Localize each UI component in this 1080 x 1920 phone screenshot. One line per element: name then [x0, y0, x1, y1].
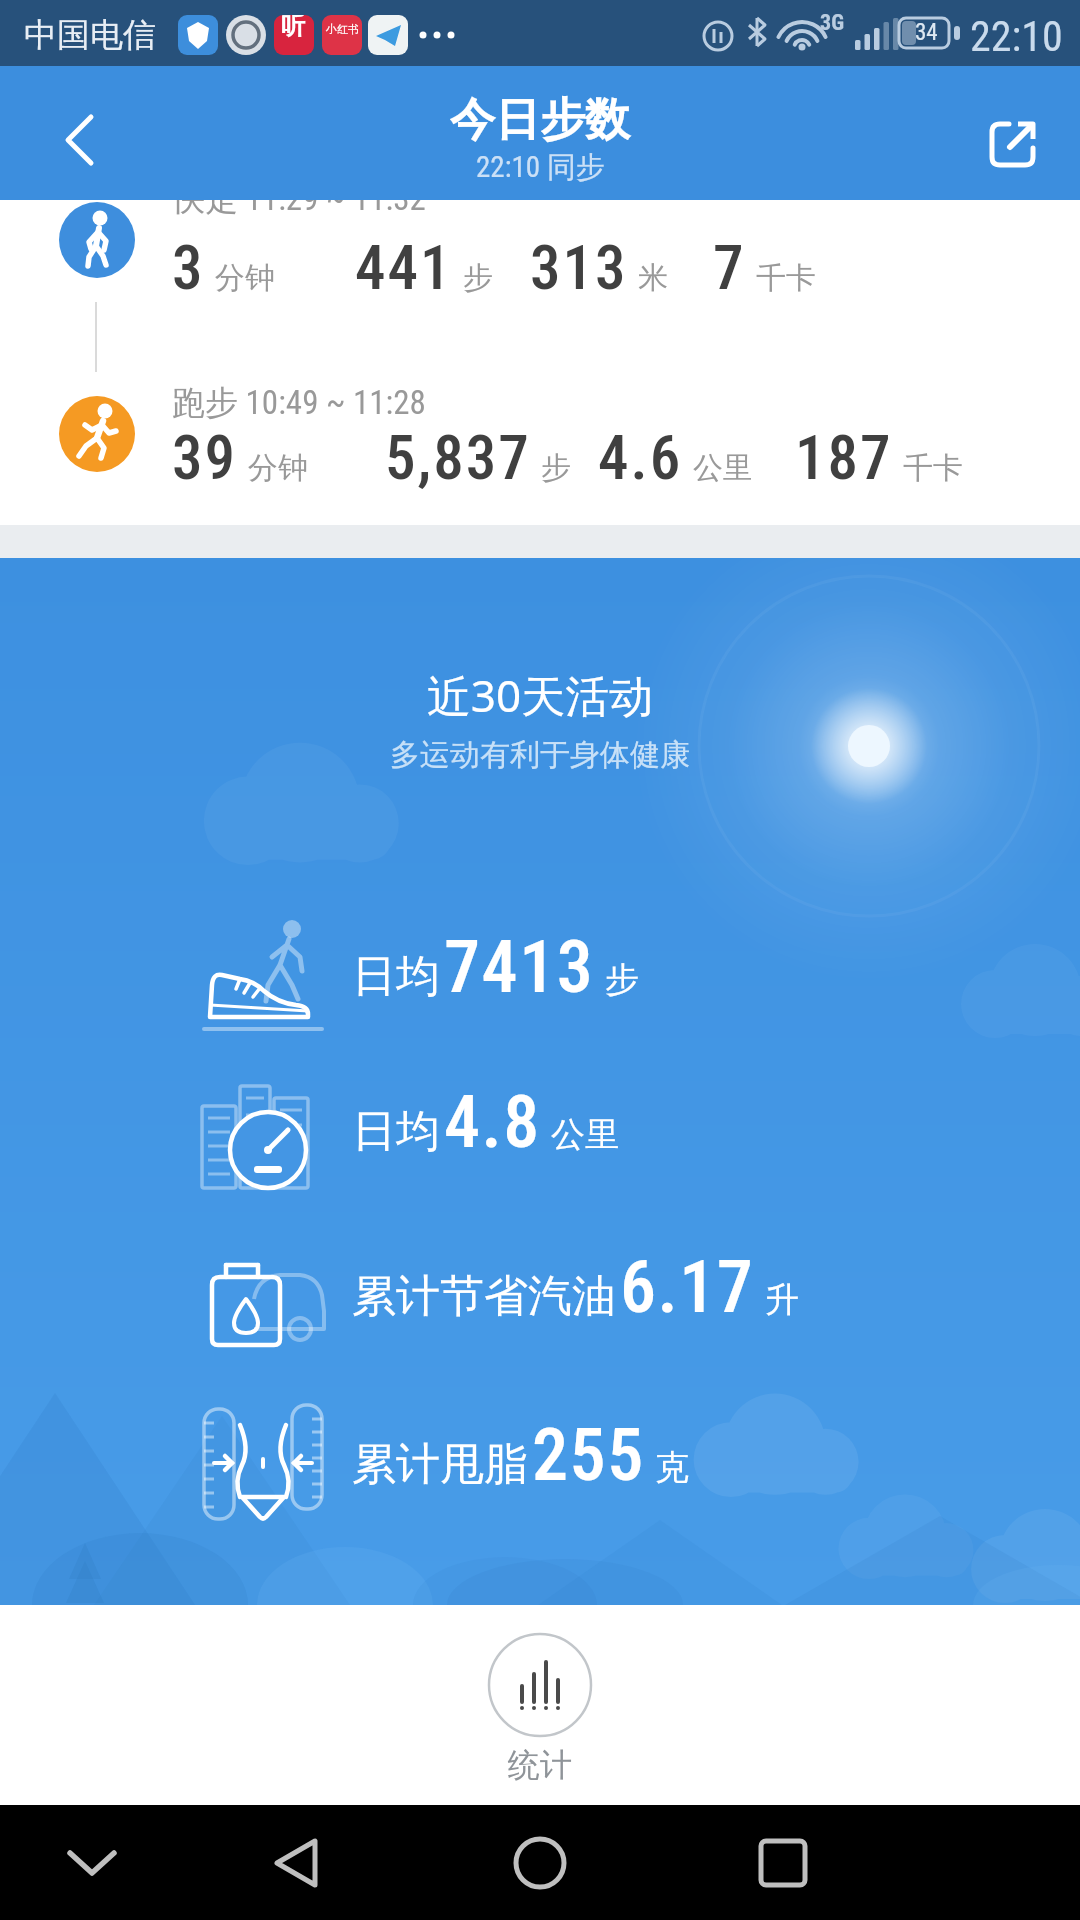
staticText: 步 [541, 449, 571, 487]
staticText: 升 [765, 1278, 799, 1321]
staticText: 近30天活动 [0, 665, 1080, 725]
button[interactable]: 日均 [0, 913, 1080, 1047]
staticText: 分钟 [248, 449, 308, 487]
staticText: 千卡 [903, 449, 963, 487]
staticText: 3 [172, 232, 205, 303]
staticText: 克 [655, 1446, 689, 1489]
staticText: 公里 [551, 1113, 619, 1156]
staticText: 3G [820, 10, 845, 36]
staticText: 分钟 [215, 259, 275, 297]
button[interactable]: 统计 [488, 1605, 592, 1785]
staticText: 22:10 [970, 12, 1063, 61]
staticText: 统计 [508, 1745, 572, 1785]
staticText: 小红书 [326, 22, 359, 36]
button[interactable] [247, 1833, 347, 1893]
button[interactable] [59, 396, 135, 472]
staticText: 7413 [444, 925, 595, 1009]
staticText: 313 [530, 232, 628, 303]
staticText: 米 [638, 259, 668, 297]
staticText: 日均 [352, 1104, 440, 1159]
staticText: 快走 11:29 ~ 11:32 [172, 200, 426, 220]
staticText: 34 [915, 19, 938, 46]
staticText: 6.17 [620, 1245, 755, 1329]
button[interactable] [40, 113, 120, 173]
button[interactable]: 累计节省汽油 [0, 1233, 1080, 1367]
staticText: 累计甩脂 [352, 1437, 528, 1492]
staticText: 跑步 10:49 ~ 11:28 [172, 382, 426, 424]
button[interactable]: 累计甩脂 [0, 1401, 1080, 1535]
staticText: 7 [713, 232, 746, 303]
button[interactable] [490, 1833, 590, 1893]
staticText: 中国电信 [24, 14, 156, 56]
staticText: 187 [795, 422, 893, 493]
button[interactable] [975, 107, 1051, 183]
staticText: 441 [355, 232, 453, 303]
button[interactable] [59, 202, 135, 278]
button[interactable] [733, 1833, 833, 1893]
staticText: 4.6 [598, 422, 683, 493]
button[interactable]: 日均 [0, 1068, 1080, 1202]
staticText: 千卡 [756, 259, 816, 297]
staticText: 步 [605, 958, 639, 1001]
button[interactable] [42, 1833, 142, 1893]
staticText: 累计节省汽油 [352, 1269, 616, 1324]
staticText: 步 [463, 259, 493, 297]
staticText: 多运动有利于身体健康 [0, 736, 1080, 774]
staticText: 5,837 [385, 422, 531, 493]
staticText: 听 [281, 15, 305, 41]
staticText: 今日步数 [450, 92, 630, 149]
staticText: 22:10 同步 [476, 149, 605, 186]
staticText: 公里 [693, 449, 753, 487]
staticText: 4.8 [444, 1080, 541, 1164]
staticText: 255 [532, 1413, 645, 1497]
staticText: 39 [172, 422, 238, 493]
staticText: 日均 [352, 949, 440, 1004]
